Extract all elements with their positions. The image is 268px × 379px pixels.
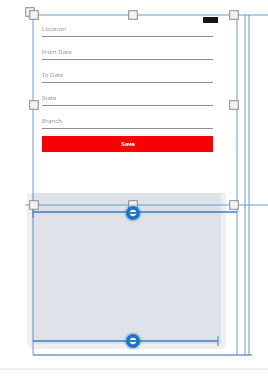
staticText: Location (42, 25, 67, 33)
button[interactable]: State (42, 94, 213, 106)
staticText: To Date (42, 71, 64, 79)
staticText: State (42, 94, 57, 102)
staticText: Save (121, 140, 135, 148)
button[interactable]: From Date (42, 48, 213, 60)
button[interactable]: Location (42, 25, 213, 37)
staticText: Branch (42, 117, 62, 125)
button[interactable]: Branch (42, 117, 213, 129)
other: Content area (32, 193, 221, 344)
button[interactable]: To Date (42, 71, 213, 83)
staticText: From Date (42, 48, 72, 56)
button[interactable]: Save (42, 136, 213, 152)
